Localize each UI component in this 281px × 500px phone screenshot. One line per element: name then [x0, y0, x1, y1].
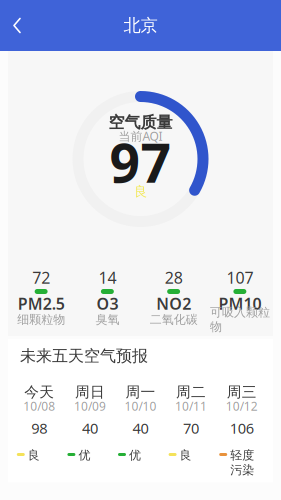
staticText: 14 [98, 267, 116, 288]
staticText: 未来五天空气预报 [20, 346, 148, 366]
staticText: 当前AQI [118, 128, 162, 144]
staticText: 周一 [125, 383, 155, 401]
staticText: 周二 [176, 383, 206, 401]
staticText: 40 [82, 418, 98, 438]
staticText: 今天 [24, 383, 54, 401]
staticText: 空气质量 [108, 113, 172, 132]
staticText: 良 [28, 448, 40, 463]
staticText: PM2.5 [18, 293, 65, 314]
staticText: 70 [183, 418, 199, 438]
staticText: 10/09 [74, 398, 106, 414]
staticText: 10/08 [23, 398, 55, 414]
staticText: 97 [109, 127, 171, 197]
staticText: 良 [180, 448, 192, 463]
staticText: 良 [134, 183, 147, 200]
staticText: NO2 [156, 293, 191, 314]
staticText: 10/10 [124, 398, 156, 414]
staticText: 优 [129, 448, 141, 463]
staticText: 二氧化碳 [150, 312, 198, 327]
staticText: 72 [32, 267, 50, 288]
staticText: 10/11 [175, 398, 207, 414]
staticText: 106 [230, 418, 254, 438]
staticText: 轻度污染 [230, 448, 254, 477]
staticText: 107 [226, 267, 253, 288]
staticText: 周日 [75, 383, 105, 401]
button[interactable]: Back [6, 12, 36, 38]
staticText: 可吸入颗粒物 [210, 305, 270, 334]
staticText: 北京 [123, 15, 157, 36]
staticText: 细颗粒物 [17, 312, 65, 327]
staticText: 10/12 [226, 398, 258, 414]
staticText: 98 [31, 418, 47, 438]
staticText: O3 [96, 293, 118, 314]
staticText: 40 [132, 418, 148, 438]
staticText: 优 [78, 448, 90, 463]
staticText: 周三 [227, 383, 257, 401]
staticText: 28 [165, 267, 183, 288]
staticText: 臭氧 [95, 312, 119, 327]
staticText: PM10 [218, 293, 261, 314]
